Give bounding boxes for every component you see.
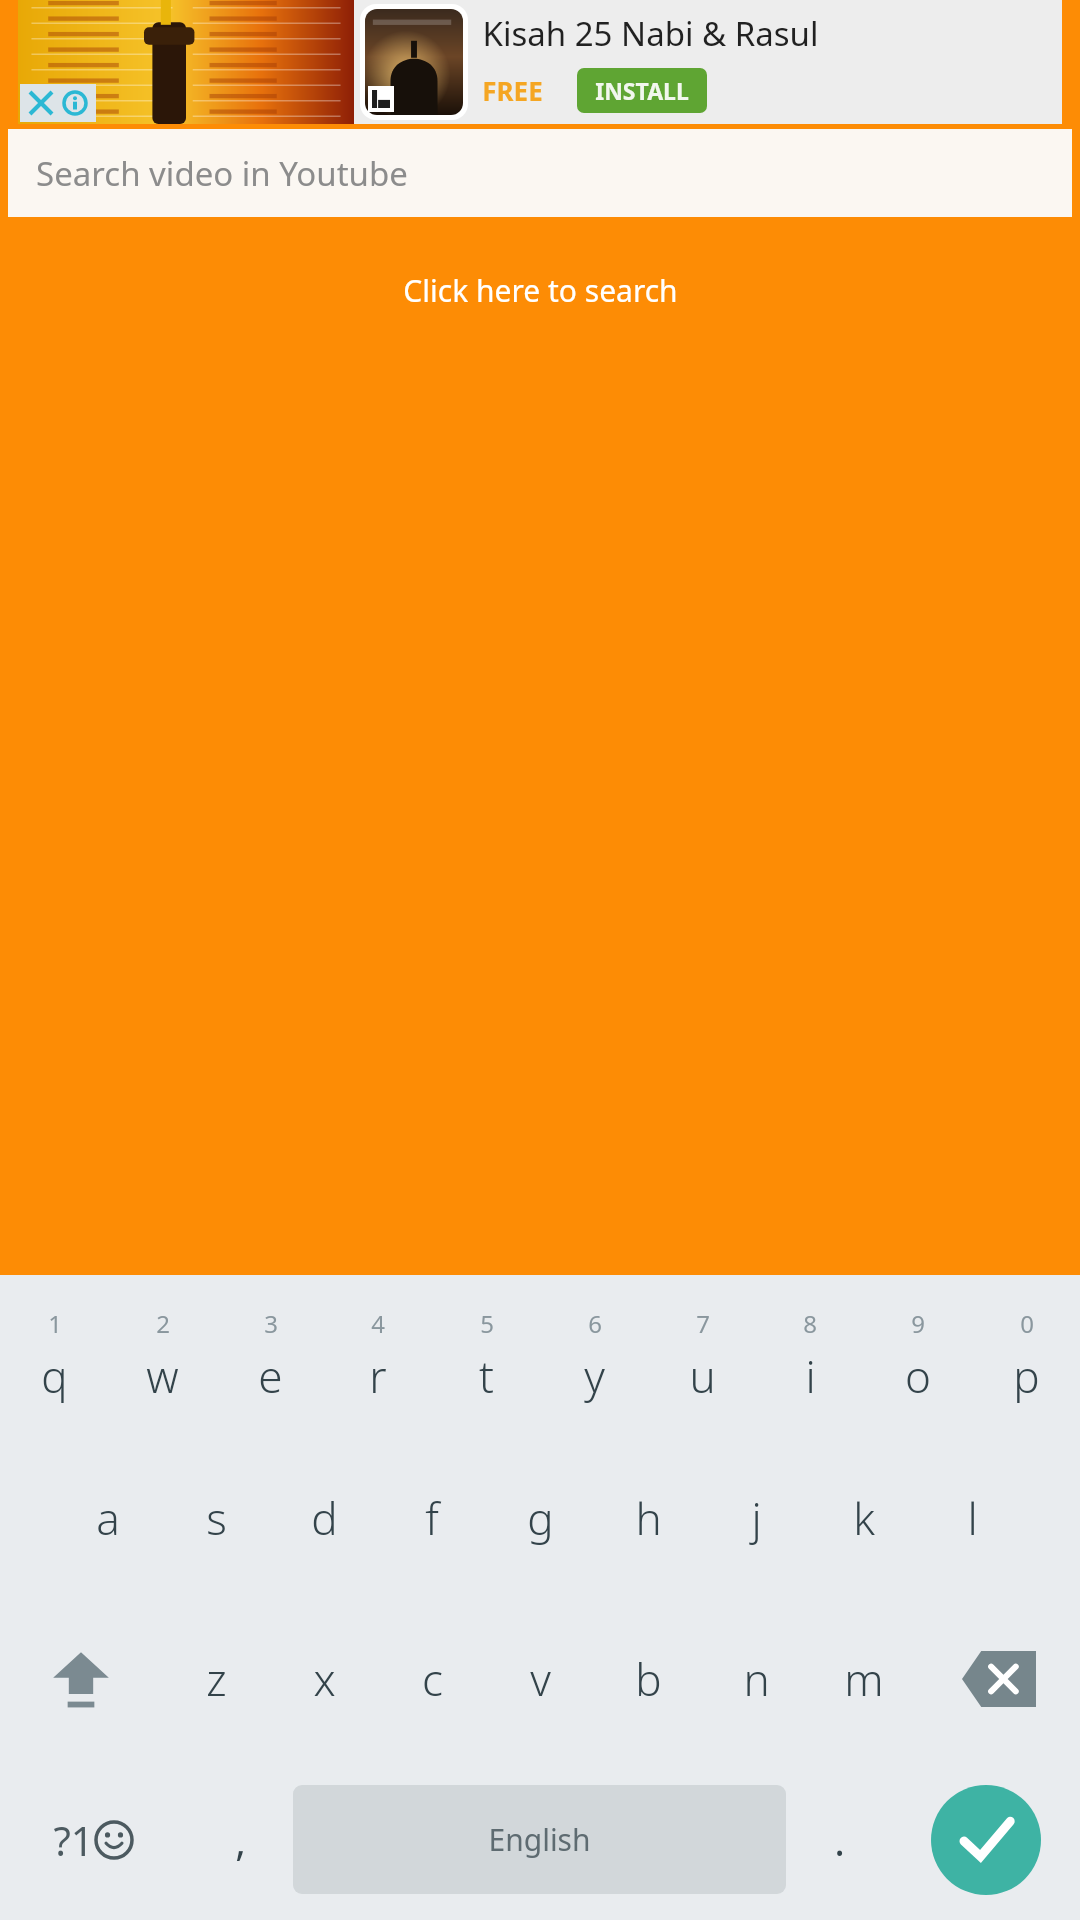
button[interactable]: Enter [892,1759,1080,1920]
button[interactable]: English [293,1785,786,1894]
button[interactable]: 9 [864,1275,972,1437]
staticText: d [311,1488,338,1548]
staticText: s [206,1488,227,1548]
button[interactable]: c [378,1598,486,1759]
staticText: 0 [1020,1307,1034,1340]
button[interactable]: g [486,1437,594,1598]
button[interactable]: 0 [972,1275,1080,1437]
button[interactable]: 4 [324,1275,432,1437]
button[interactable]: , [187,1759,293,1920]
button[interactable]: 1 [0,1275,108,1437]
staticText: INSTALL [595,75,689,106]
button[interactable]: 8 [756,1275,864,1437]
button[interactable]: n [702,1598,810,1759]
staticText: 8 [803,1307,817,1340]
staticText: z [206,1649,227,1709]
staticText: r [369,1346,387,1406]
staticText: u [689,1346,716,1406]
staticText: English [488,1819,591,1860]
button[interactable]: 5 [432,1275,540,1437]
button[interactable]: INSTALL [577,68,707,113]
staticText: c [422,1649,443,1709]
staticText: i [805,1346,816,1406]
staticText: k [853,1488,875,1548]
button[interactable]: Symbols and emoji [0,1759,187,1920]
staticText: j [751,1488,762,1548]
staticText: , [235,1813,246,1867]
staticText: 3 [264,1307,278,1340]
staticText: 5 [480,1307,494,1340]
button[interactable]: m [810,1598,918,1759]
button[interactable]: v [486,1598,594,1759]
staticText: 1 [48,1307,62,1340]
staticText: a [96,1488,120,1548]
staticText: 6 [588,1307,602,1340]
staticText: h [635,1488,662,1548]
button[interactable]: Click here to search [395,266,686,315]
button[interactable]: Close ad [24,86,58,120]
button[interactable]: l [918,1437,1026,1598]
staticText: p [1013,1346,1040,1406]
button[interactable]: z [162,1598,270,1759]
button[interactable]: f [378,1437,486,1598]
button[interactable]: x [270,1598,378,1759]
staticText: x [313,1649,336,1709]
button[interactable]: d [270,1437,378,1598]
staticText: 2 [156,1307,170,1340]
staticText: m [844,1649,884,1709]
staticText: FREE [482,73,543,108]
button[interactable]: 3 [216,1275,324,1437]
button[interactable]: a [54,1437,162,1598]
staticText: v [530,1649,551,1709]
staticText: f [425,1488,439,1548]
staticText: e [258,1346,283,1406]
staticText: w [146,1346,179,1406]
staticText: b [635,1649,662,1709]
button[interactable]: Ad info [58,86,92,120]
button[interactable]: j [702,1437,810,1598]
staticText: Kisah 25 Nabi & Rasul [482,11,819,56]
button[interactable]: Close ad [0,0,1080,124]
button[interactable]: Backspace [918,1598,1080,1759]
button[interactable]: Search video in Youtube [8,129,1072,217]
staticText: l [967,1488,978,1548]
button[interactable]: 7 [648,1275,756,1437]
staticText: n [743,1649,770,1709]
staticText: Search video in Youtube [36,151,408,196]
staticText: o [905,1346,931,1406]
button[interactable]: b [594,1598,702,1759]
staticText: t [479,1346,494,1406]
staticText: g [527,1488,554,1548]
staticText: y [584,1346,605,1406]
button[interactable]: s [162,1437,270,1598]
staticText: 9 [911,1307,925,1340]
button[interactable]: . [786,1759,892,1920]
staticText: 4 [371,1307,385,1340]
button[interactable]: 6 [540,1275,648,1437]
staticText: q [41,1346,68,1406]
staticText: 7 [696,1307,710,1340]
button[interactable]: Shift [0,1598,162,1759]
staticText: Click here to search [403,270,678,311]
button[interactable]: k [810,1437,918,1598]
staticText: . [834,1813,845,1867]
button[interactable]: 2 [108,1275,216,1437]
button[interactable]: h [594,1437,702,1598]
staticText: ?1 [53,1813,94,1867]
